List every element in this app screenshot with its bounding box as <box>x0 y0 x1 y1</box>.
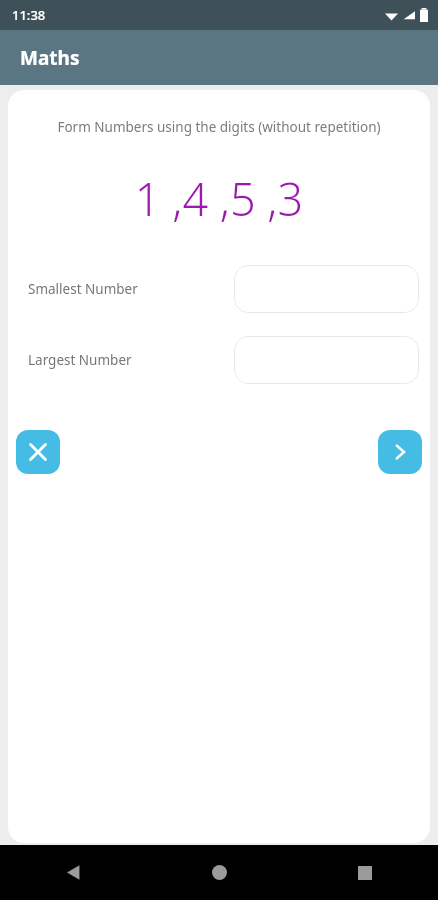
button[interactable] <box>234 265 419 313</box>
staticText: 1 ,4 ,5 ,3 <box>8 168 430 229</box>
staticText: Smallest Number <box>28 280 138 298</box>
button[interactable]: Back <box>0 845 146 900</box>
button[interactable] <box>234 336 419 384</box>
button[interactable]: Next <box>378 430 422 474</box>
staticText: Largest Number <box>28 351 132 369</box>
button[interactable]: Home <box>146 845 292 900</box>
button[interactable]: Close <box>16 430 60 474</box>
staticText: Form Numbers using the digits (without r… <box>20 118 418 136</box>
button[interactable]: Recents <box>292 845 438 900</box>
staticText: 11:38 <box>12 6 46 24</box>
staticText: Maths <box>20 45 80 71</box>
